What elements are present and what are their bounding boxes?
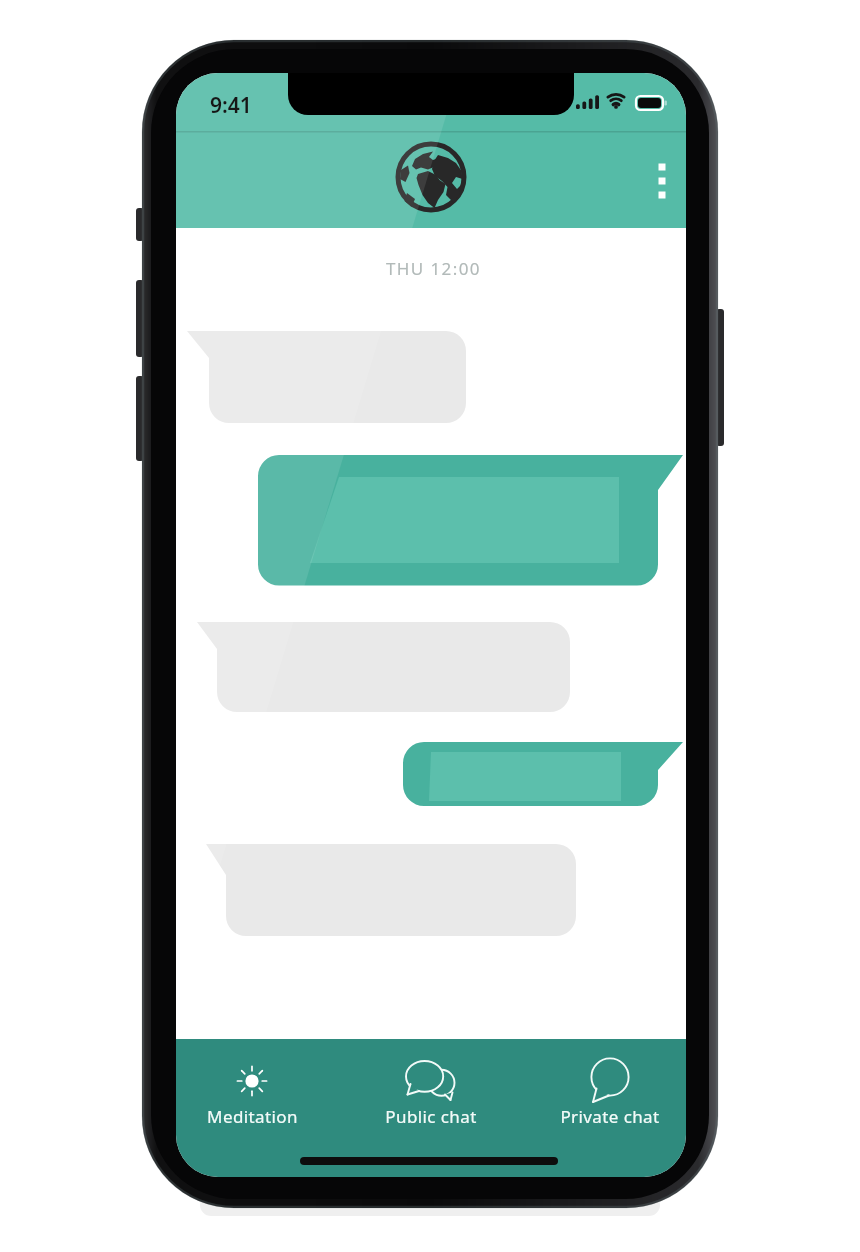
button[interactable] [197,622,570,712]
button[interactable] [403,742,683,806]
button[interactable]: Meditation [186,1050,318,1128]
button[interactable] [646,155,676,207]
staticText: Private chat [560,1105,660,1128]
button[interactable] [258,455,683,586]
button[interactable] [206,844,576,936]
button[interactable]: Public chat [365,1050,497,1128]
staticText: THU 12:00 [386,257,481,280]
button[interactable]: Private chat [544,1050,676,1128]
staticText: Public chat [385,1105,477,1128]
staticText: Meditation [207,1105,298,1128]
staticText: 9:41 [210,91,252,115]
button[interactable] [187,331,466,423]
